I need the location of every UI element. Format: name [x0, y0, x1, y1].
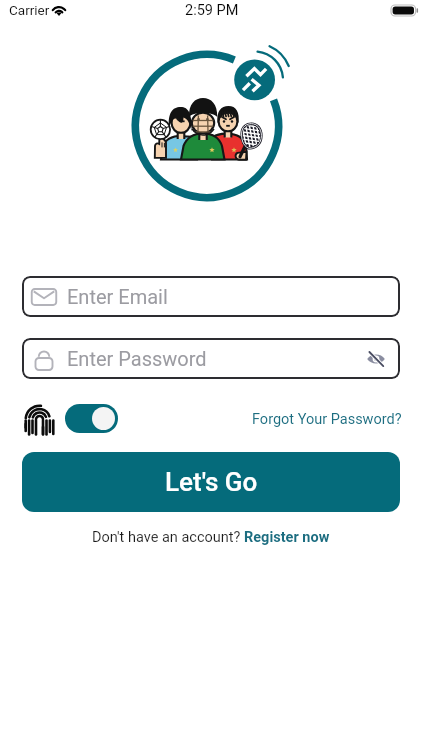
staticText: 2:59 PM — [185, 2, 239, 19]
button[interactable]: Enable fingerprint login — [65, 404, 118, 433]
button[interactable]: Forgot Your Password? — [252, 411, 402, 428]
button[interactable]: Fingerprint login — [25, 401, 54, 433]
button[interactable]: Let's Go — [22, 452, 400, 512]
staticText: Enter Email — [67, 285, 168, 308]
staticText: Forgot Your Password? — [252, 411, 402, 428]
button[interactable]: Register now — [244, 529, 330, 546]
staticText: Register now — [244, 529, 330, 546]
staticText: Enter Password — [67, 347, 207, 370]
staticText: Let's Go — [165, 467, 258, 497]
button[interactable]: Enter Email — [22, 276, 400, 317]
staticText: Don't have an account? — [92, 529, 244, 546]
button[interactable]: Show password — [363, 346, 389, 372]
staticText: Carrier — [9, 2, 50, 18]
button[interactable]: Enter Password — [22, 338, 400, 379]
